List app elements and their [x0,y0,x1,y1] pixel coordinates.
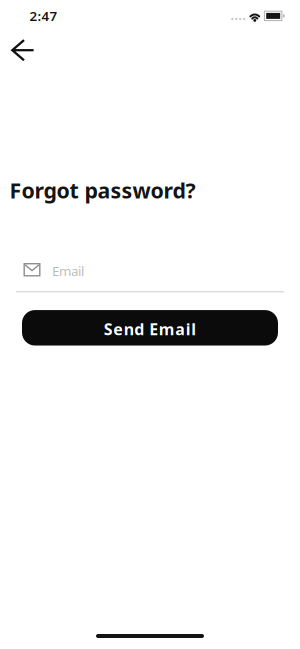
button[interactable]: Email [16,258,284,294]
button[interactable]: Back [8,35,38,65]
staticText: Send Email [104,318,196,340]
staticText: 2:47 [29,7,57,25]
button[interactable]: Send Email [22,310,278,346]
staticText: Email [52,262,84,280]
staticText: Forgot password? [9,176,195,204]
